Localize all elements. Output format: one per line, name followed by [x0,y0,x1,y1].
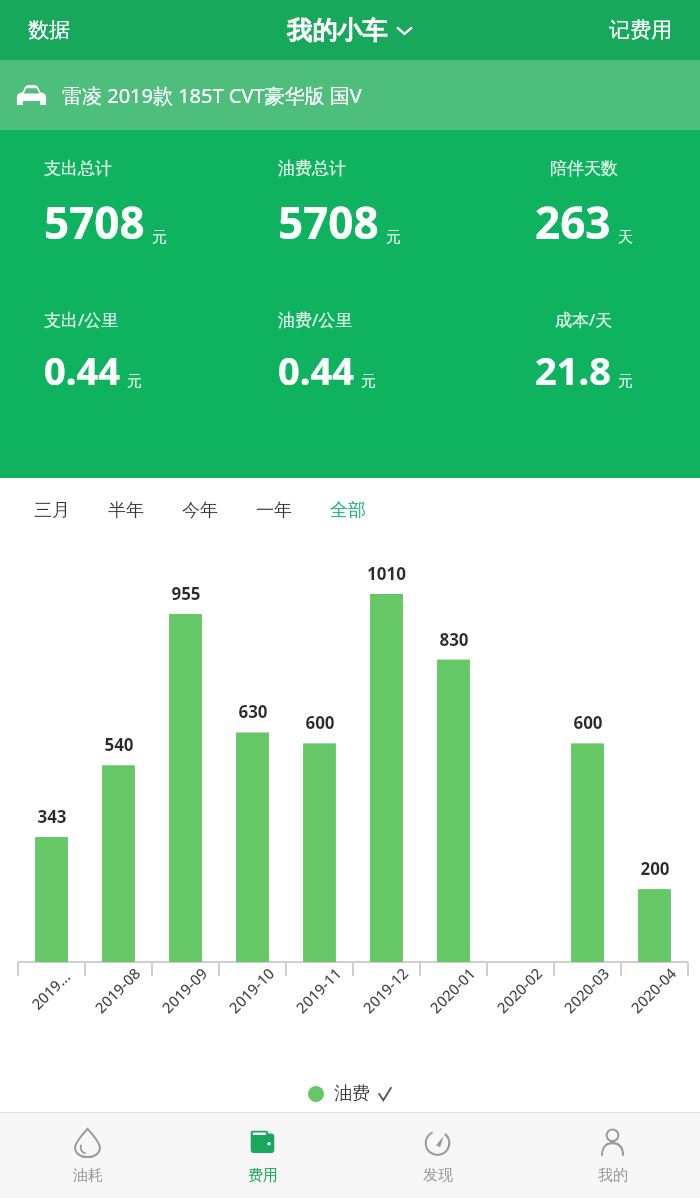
staticText: 我的 [598,1166,628,1185]
staticText: 元 [152,228,167,247]
button[interactable]: 油费/公里 [234,308,467,396]
button[interactable]: 我的 [525,1113,700,1198]
staticText: 油耗 [73,1166,103,1185]
staticText: 元 [127,372,142,391]
staticText: 天 [618,228,633,247]
staticText: 0.44 [278,344,354,396]
button[interactable]: 成本/天 [467,308,700,396]
staticText: 2020-03 [559,963,614,1017]
button[interactable]: 油费总计 [234,158,467,252]
staticText: 955 [171,582,201,605]
staticText: 2020-01 [425,963,480,1017]
staticText: 陪伴天数 [550,158,618,179]
button[interactable]: 三月 [20,493,84,528]
staticText: 费用 [248,1166,278,1185]
staticText: 2019-10 [224,963,279,1017]
staticText: 540 [104,733,134,756]
staticText: 一年 [256,499,292,522]
staticText: 21.8 [535,344,611,396]
other: 费用 [247,1127,278,1158]
staticText: 元 [618,372,633,391]
staticText: 半年 [108,499,144,522]
staticText: 三月 [34,499,70,522]
staticText: 全部 [330,499,366,522]
staticText: 数据 [28,17,70,43]
staticText: 支出总计 [44,158,112,179]
button[interactable]: 油耗 [0,1113,175,1198]
staticText: 记费用 [609,17,672,43]
staticText: 今年 [182,499,218,522]
staticText: 1010 [367,562,406,585]
button[interactable]: 数据 [14,9,84,51]
button[interactable]: 半年 [94,493,158,528]
staticText: 油费 [334,1082,370,1105]
button[interactable]: 发现 [350,1113,525,1198]
staticText: 630 [238,700,268,723]
staticText: 我的小车 [287,15,387,46]
staticText: 200 [640,857,670,880]
staticText: 343 [37,805,67,828]
staticText: 元 [386,228,401,247]
staticText: 2020-04 [626,963,681,1017]
staticText: 2019-12 [358,963,413,1017]
staticText: 600 [305,711,335,734]
staticText: 元 [361,372,376,391]
button[interactable]: 支出总计 [0,158,234,252]
staticText: 600 [573,711,603,734]
staticText: 发现 [423,1166,453,1185]
staticText: 0.44 [44,344,120,396]
button[interactable]: 陪伴天数 [467,158,700,252]
staticText: 263 [535,192,611,252]
button[interactable]: 记费用 [595,9,686,51]
other: 我的 [597,1127,628,1158]
staticText: 雷凌 2019款 185T CVT豪华版 国V [62,82,362,109]
staticText: 2019... [27,966,74,1014]
button[interactable]: 油费 [300,1078,400,1109]
staticText: 成本/天 [555,308,613,331]
other: 油耗 [72,1127,103,1158]
button[interactable]: 费用 [175,1113,350,1198]
staticText: 2019-11 [291,963,346,1017]
other: 发现 [422,1127,453,1158]
button[interactable]: 我的小车 [277,9,423,52]
button[interactable]: 支出/公里 [0,308,234,396]
staticText: 830 [439,628,469,651]
staticText: 5708 [44,192,145,252]
staticText: 油费总计 [278,158,346,179]
button[interactable]: 全部 [316,493,380,528]
button[interactable]: 一年 [242,493,306,528]
staticText: 支出/公里 [44,308,119,331]
button[interactable]: 雷凌 2019款 185T CVT豪华版 国V [0,60,700,130]
staticText: 2019-08 [90,963,145,1017]
staticText: 5708 [278,192,379,252]
staticText: 2019-09 [157,963,212,1017]
button[interactable]: 今年 [168,493,232,528]
staticText: 油费/公里 [278,308,353,331]
staticText: 2020-02 [492,963,547,1017]
